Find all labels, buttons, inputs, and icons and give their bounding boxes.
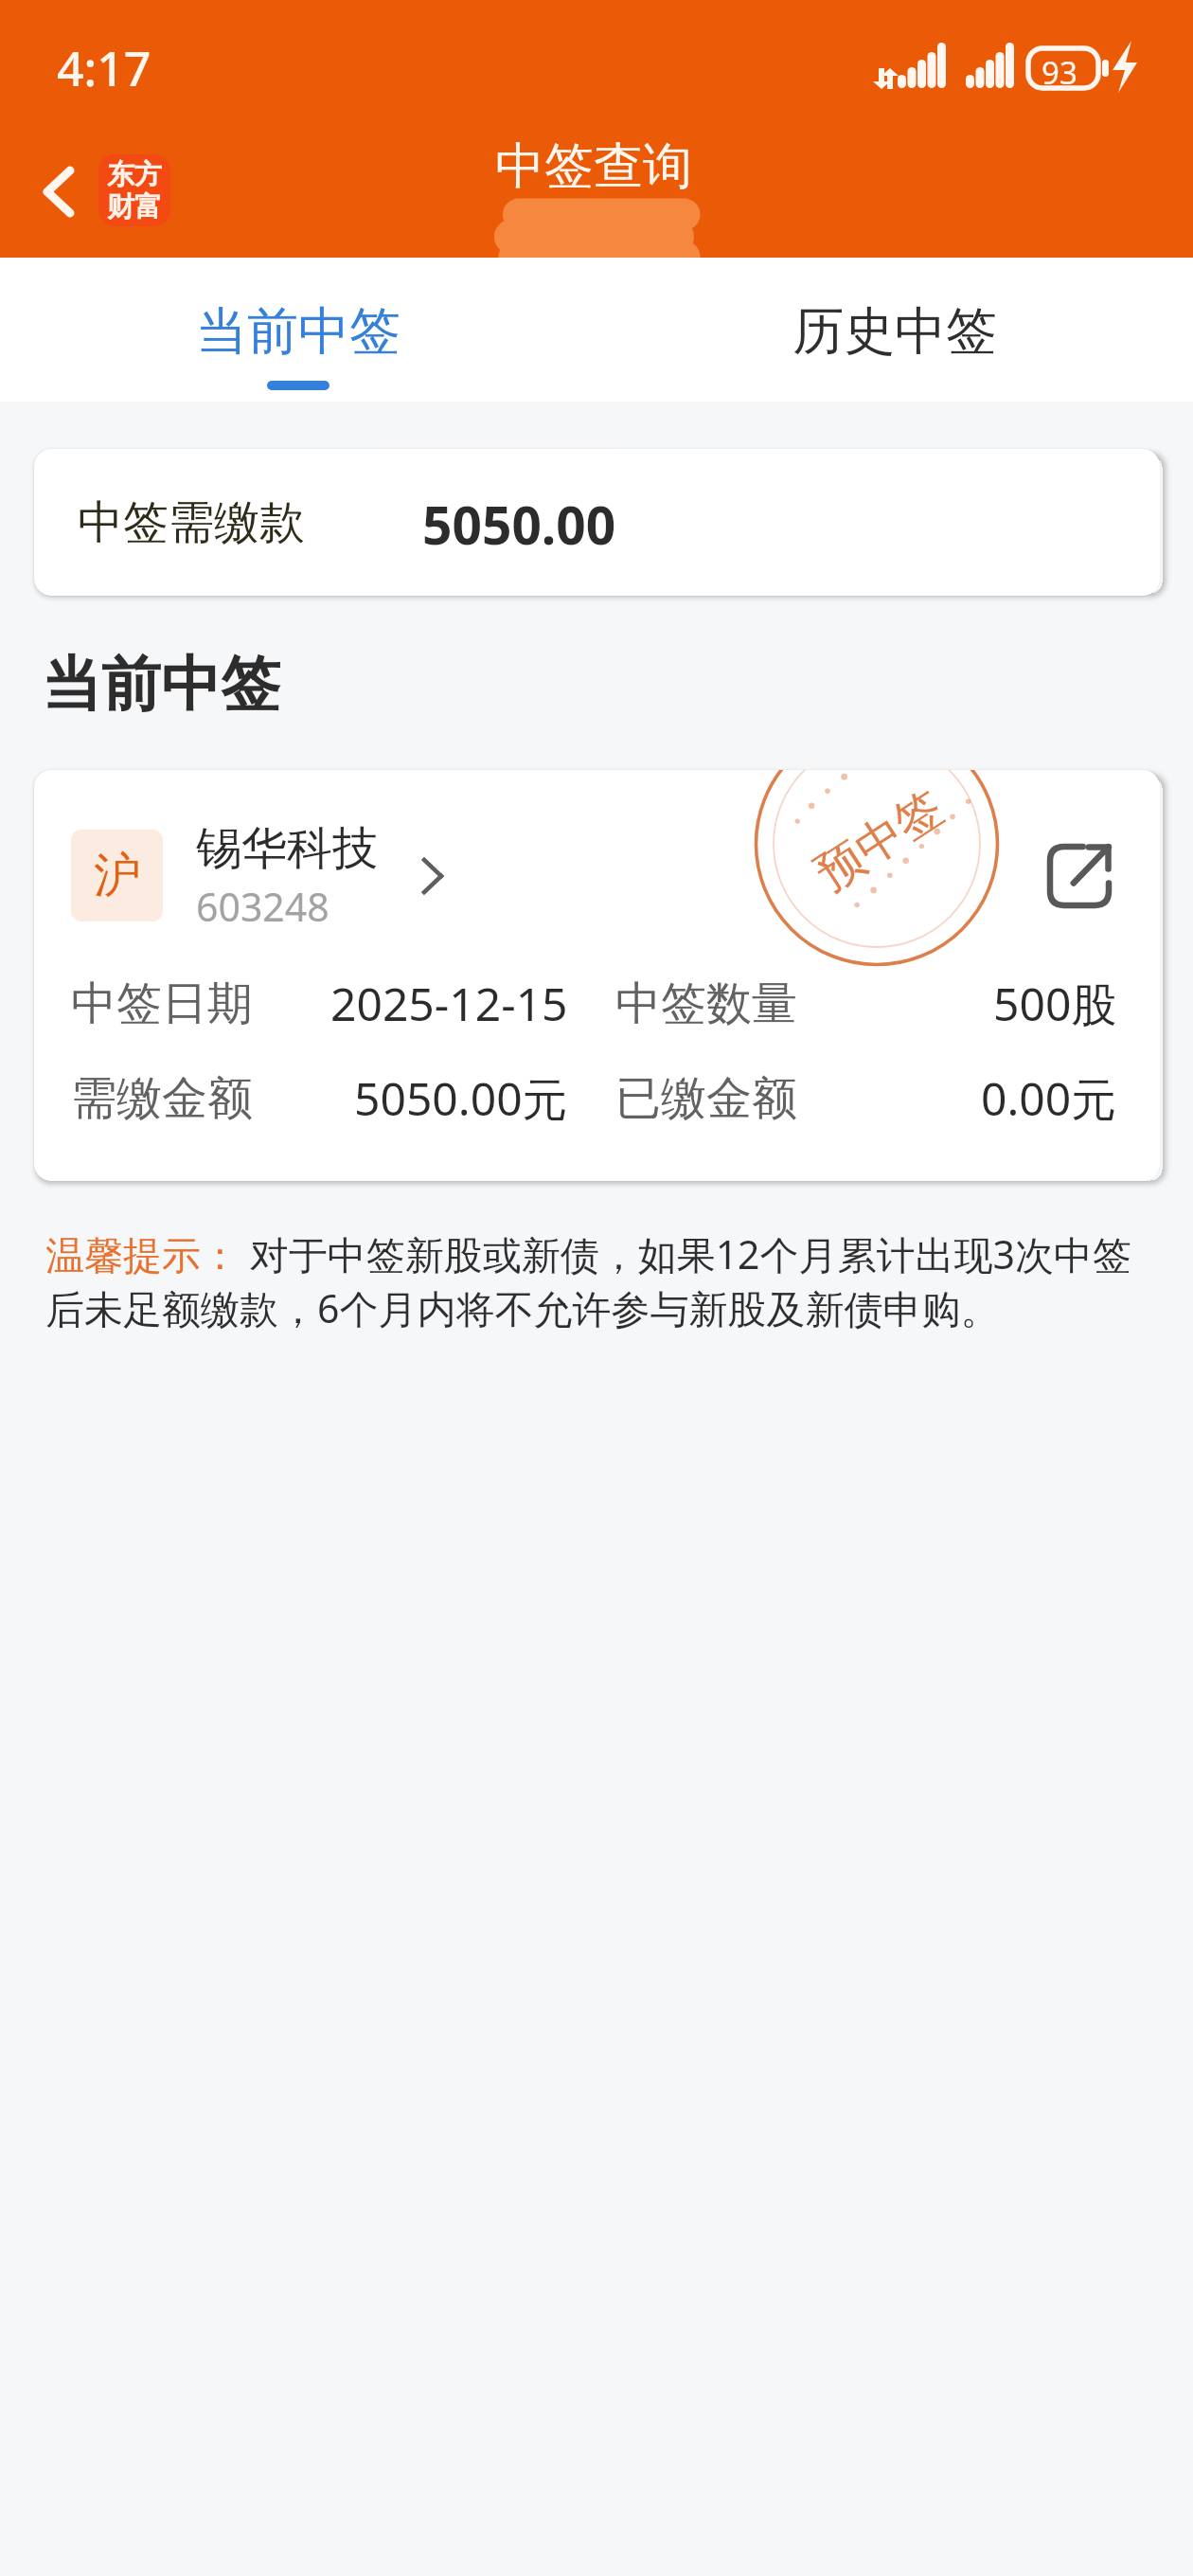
staticText: 中签日期 (71, 975, 253, 1032)
staticText: 温馨提示： 对于中签新股或新债，如果12个月累计出现3次中签后未足额缴款，6个月… (45, 1227, 1148, 1334)
staticText: 当前中签 (196, 299, 401, 364)
staticText: 预中签 (806, 778, 954, 904)
staticText: 需缴金额 (71, 1070, 253, 1127)
staticText: 沪 (94, 846, 141, 905)
button[interactable] (62, 822, 470, 931)
button[interactable]: 返回 (21, 143, 184, 238)
button[interactable]: 分享 (1042, 839, 1116, 913)
staticText: 历史中签 (792, 299, 997, 364)
staticText: 500股 (993, 973, 1117, 1035)
button[interactable]: 查看股票详情 (402, 838, 463, 912)
staticText: 5050.00元 (354, 1067, 568, 1130)
staticText: 0.00元 (981, 1067, 1117, 1130)
staticText: 中签需缴款 (78, 494, 305, 551)
other: 返回 (32, 154, 76, 226)
button[interactable]: 历史中签 (596, 258, 1193, 402)
staticText: 当前中签 (42, 647, 280, 722)
staticText: 已缴金额 (615, 1070, 797, 1127)
staticText: 4:17 (57, 36, 151, 100)
button[interactable]: 当前中签 (0, 258, 596, 402)
staticText: 东方 财富 (107, 157, 162, 224)
staticText: 603248 (196, 880, 329, 933)
staticText: 中签查询 (495, 135, 692, 198)
staticText: 93 (1042, 51, 1077, 94)
staticText: 中签数量 (615, 975, 797, 1032)
staticText: 锡华科技 (196, 820, 378, 877)
staticText: 2025-12-15 (330, 973, 568, 1034)
staticText: 5050.00 (422, 489, 616, 560)
